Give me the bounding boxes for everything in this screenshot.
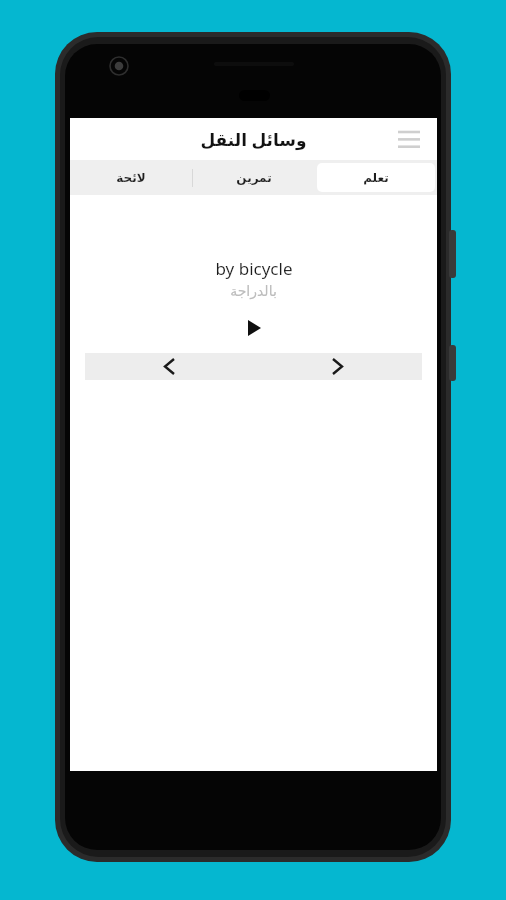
- button[interactable]: تمرين: [195, 163, 313, 192]
- staticText: by bicycle: [215, 257, 293, 280]
- button[interactable]: Menu: [389, 119, 429, 159]
- button[interactable]: تعلم: [317, 163, 435, 192]
- button[interactable]: Play: [238, 312, 270, 344]
- button[interactable]: لائحة: [72, 163, 190, 192]
- button[interactable]: Previous: [85, 353, 253, 380]
- staticText: تعلم: [363, 171, 389, 185]
- staticText: تمرين: [236, 171, 272, 185]
- staticText: وسائل النقل: [200, 128, 307, 151]
- button[interactable]: by bicycle: [85, 240, 422, 353]
- staticText: بالدراجة: [230, 283, 277, 299]
- button[interactable]: Next: [253, 353, 422, 380]
- staticText: لائحة: [116, 171, 146, 185]
